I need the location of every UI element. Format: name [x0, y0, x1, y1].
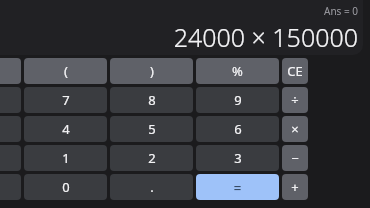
button[interactable]: × [282, 116, 308, 142]
staticText: = [233, 178, 242, 197]
staticText: 3 [234, 149, 242, 167]
button[interactable]: 4 [24, 116, 107, 142]
button[interactable]: 9 [196, 87, 279, 113]
staticText: Ans = 0 [324, 4, 358, 18]
button[interactable]: + [282, 174, 308, 200]
staticText: 1 [62, 149, 70, 167]
staticText: + [291, 178, 299, 196]
button[interactable]: 1 [24, 145, 107, 171]
staticText: × [291, 120, 299, 138]
staticText: 9 [234, 91, 242, 109]
staticText: 4 [62, 120, 70, 138]
staticText: − [291, 149, 299, 167]
button[interactable]: 8 [110, 87, 193, 113]
staticText: ÷ [291, 91, 299, 109]
button[interactable]: π [0, 145, 21, 171]
staticText: 7 [62, 91, 70, 109]
button[interactable]: ÷ [282, 87, 308, 113]
staticText: % [232, 62, 243, 80]
button[interactable]: ^ [0, 87, 21, 113]
button[interactable]: 5 [110, 116, 193, 142]
button[interactable]: CE [282, 58, 308, 84]
staticText: CE [287, 62, 303, 80]
staticText: . [150, 178, 154, 196]
button[interactable]: 6 [196, 116, 279, 142]
staticText: 6 [234, 120, 242, 138]
button[interactable]: AC [0, 58, 21, 84]
button[interactable]: e [0, 174, 21, 200]
button[interactable]: ) [110, 58, 193, 84]
staticText: 5 [148, 120, 156, 138]
button[interactable]: 2 [110, 145, 193, 171]
button[interactable]: 3 [196, 145, 279, 171]
button[interactable]: % [196, 58, 279, 84]
staticText: ( [64, 62, 68, 80]
staticText: 8 [148, 91, 156, 109]
staticText: ) [150, 62, 154, 80]
staticText: 24000 × 150000 [173, 20, 358, 54]
staticText: 0 [62, 178, 70, 196]
button[interactable]: 7 [24, 87, 107, 113]
button[interactable]: − [282, 145, 308, 171]
button[interactable]: √ [0, 116, 21, 142]
button[interactable]: ( [24, 58, 107, 84]
staticText: 2 [148, 149, 156, 167]
button[interactable]: . [110, 174, 193, 200]
button[interactable]: 0 [24, 174, 107, 200]
button[interactable]: = [196, 174, 279, 200]
